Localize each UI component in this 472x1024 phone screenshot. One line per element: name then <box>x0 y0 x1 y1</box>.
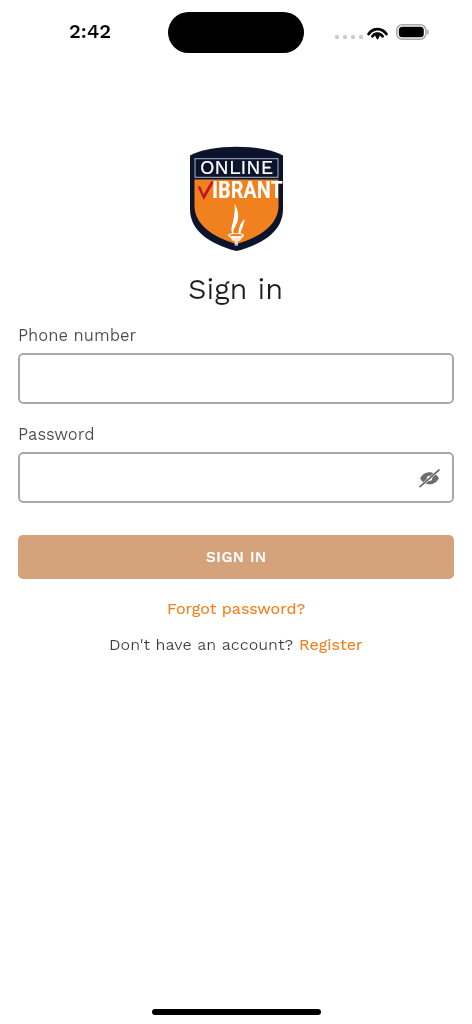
staticText: Forgot password? <box>167 599 306 618</box>
staticText: Register <box>299 635 363 654</box>
staticText: Phone number <box>18 326 137 345</box>
button[interactable]: Phone number input <box>18 353 454 404</box>
button[interactable]: Register <box>299 635 363 654</box>
staticText: IBRANT <box>212 177 283 204</box>
button[interactable]: Show password <box>415 464 443 492</box>
staticText: Don't have an account? <box>109 635 299 654</box>
staticText: Password <box>18 425 95 444</box>
staticText: SIGN IN <box>206 548 267 566</box>
button[interactable]: Password input <box>18 452 454 503</box>
staticText: Sign in <box>188 272 284 306</box>
button[interactable]: SIGN IN <box>18 535 454 579</box>
staticText: 2:42 <box>69 19 112 42</box>
staticText: ONLINE <box>200 156 274 179</box>
button[interactable]: Forgot password? <box>167 599 306 618</box>
